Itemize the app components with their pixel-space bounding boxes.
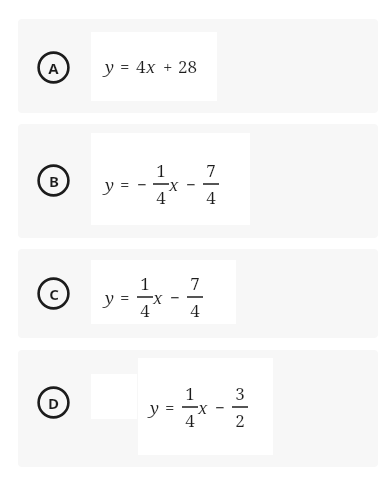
staticText: 4 [156,186,166,209]
staticText: 28 [178,55,198,78]
staticText: − [186,173,196,196]
button[interactable]: A [18,19,378,113]
staticText: 2 [235,409,245,432]
staticText: x [153,286,163,309]
button[interactable]: B [18,124,378,238]
staticText: D [48,393,59,413]
staticText: 4 [206,186,216,209]
staticText: − [137,173,147,196]
staticText: 1 [140,272,150,295]
staticText: 7 [190,272,200,295]
staticText: = [120,173,130,196]
staticText: 3 [235,382,245,405]
staticText: 7 [206,159,216,182]
button[interactable]: D [18,350,378,467]
staticText: 4 [185,409,195,432]
staticText: = [165,396,175,419]
staticText: y [105,173,114,196]
button[interactable]: C [18,249,378,338]
staticText: 4 [190,299,200,322]
staticText: 4 [136,55,146,78]
staticText: C [49,284,59,304]
staticText: − [215,396,225,419]
staticText: 1 [156,159,166,182]
staticText: y [105,286,114,309]
staticText: y [150,396,159,419]
staticText: B [49,171,59,191]
staticText: x [198,396,208,419]
staticText: 1 [185,382,195,405]
staticText: A [48,58,59,78]
staticText: + [163,55,173,78]
staticText: x [169,173,179,196]
staticText: = [120,286,130,309]
staticText: − [170,286,180,309]
staticText: x [146,55,156,78]
staticText: 4 [140,299,150,322]
staticText: = [120,55,130,78]
staticText: y [105,55,114,78]
